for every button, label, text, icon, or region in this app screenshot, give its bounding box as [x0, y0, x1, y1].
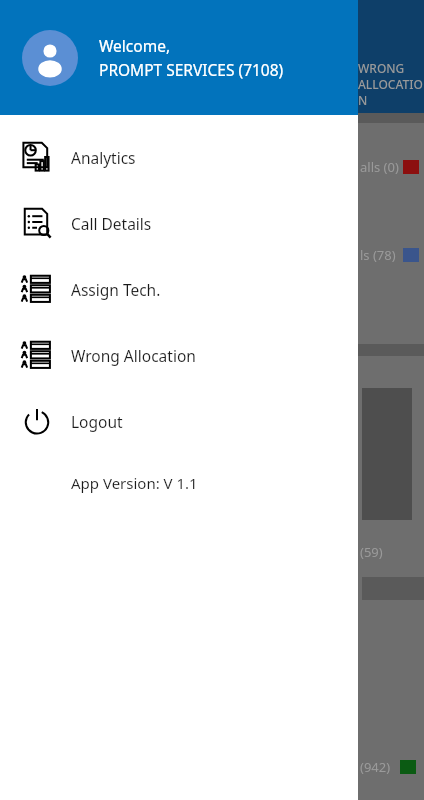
- button[interactable]: Call Details: [0, 190, 358, 256]
- button[interactable]: Analytics: [0, 124, 358, 190]
- button[interactable]: Wrong Allocation: [0, 322, 358, 388]
- staticText: Wrong Allocation: [71, 345, 196, 366]
- staticText: Call Details: [71, 213, 152, 234]
- button[interactable]: Logout: [0, 388, 358, 454]
- button[interactable]: Assign Tech.: [0, 256, 358, 322]
- staticText: (59): [360, 543, 383, 561]
- staticText: alls (0): [360, 158, 399, 176]
- staticText: Welcome,: [99, 35, 171, 56]
- staticText: App Version: V 1.1: [71, 473, 198, 493]
- staticText: (942): [360, 758, 391, 776]
- staticText: Assign Tech.: [71, 279, 161, 300]
- staticText: Analytics: [71, 147, 136, 168]
- staticText: WRONG ALLOCATION: [358, 60, 424, 108]
- staticText: PROMPT SERVICES (7108): [99, 59, 284, 80]
- staticText: Logout: [71, 411, 123, 432]
- staticText: ls (78): [360, 246, 396, 264]
